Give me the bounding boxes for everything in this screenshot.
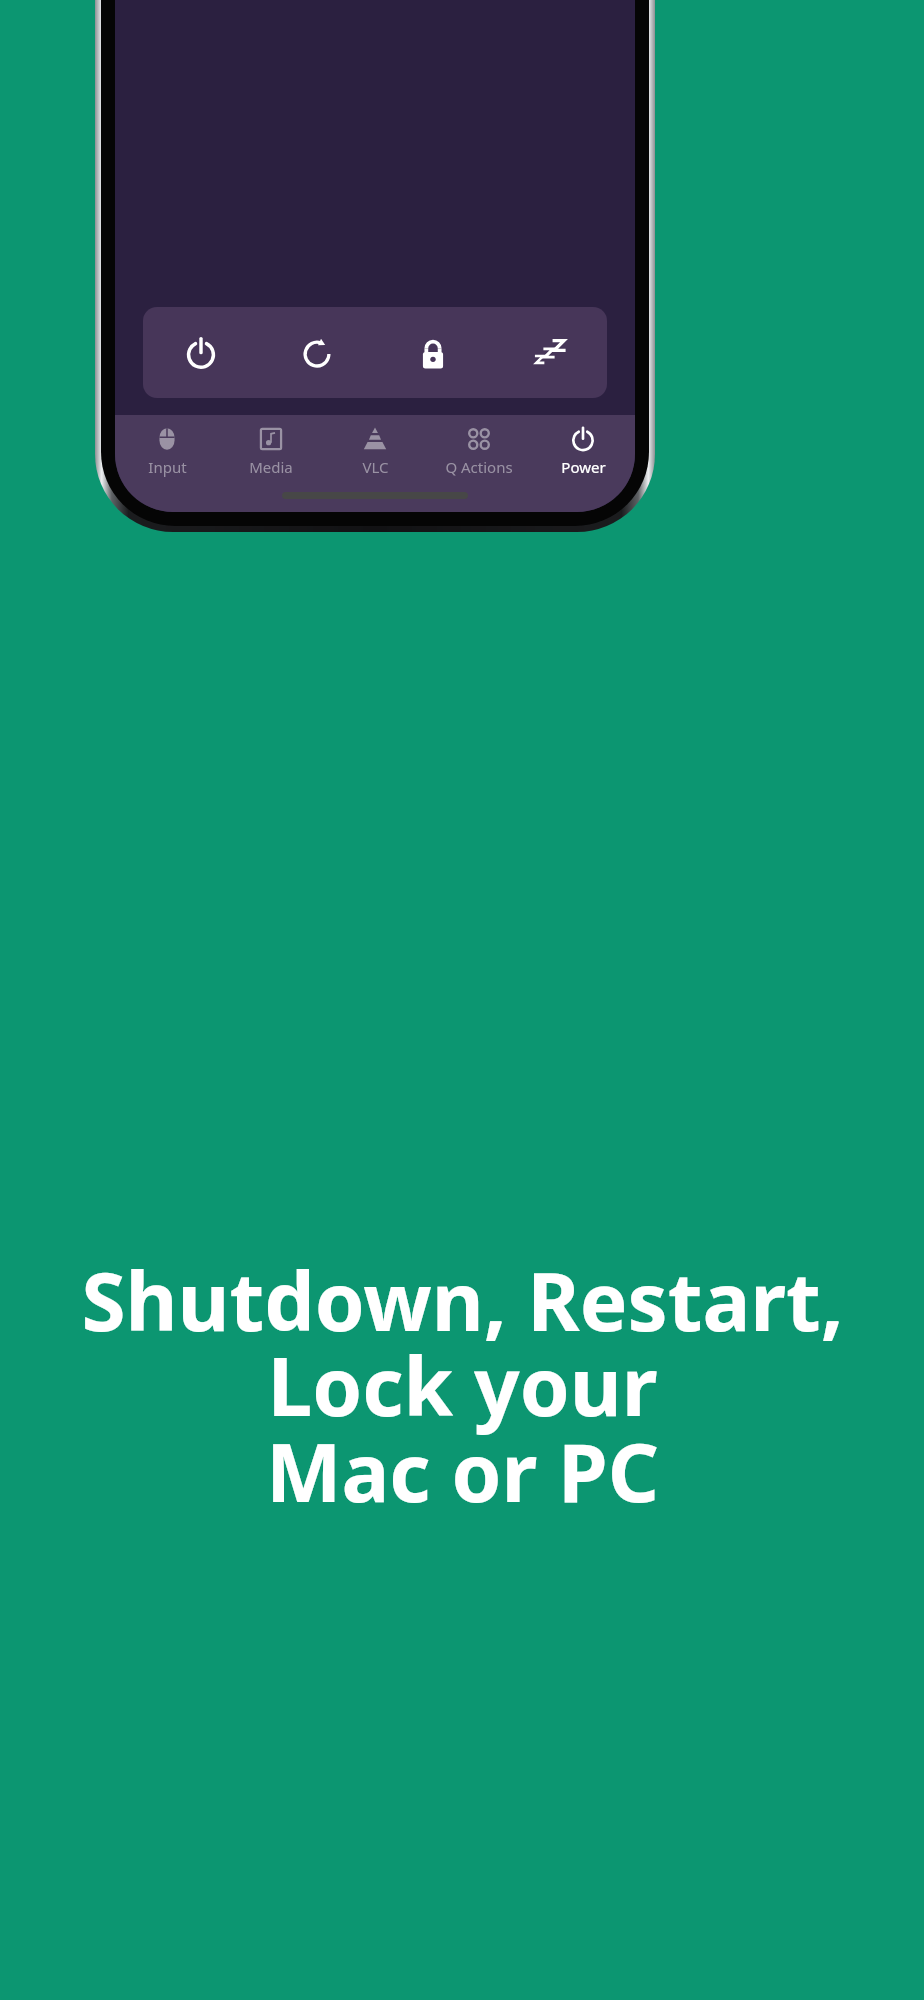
button[interactable]: Q Actions <box>427 425 531 512</box>
staticText: Q Actions <box>445 457 513 477</box>
button[interactable]: VLC <box>323 425 427 512</box>
staticText: Media <box>249 457 293 477</box>
button[interactable]: Sleep <box>491 307 607 398</box>
button[interactable]: Input <box>115 425 219 512</box>
button[interactable]: Shut down <box>143 307 259 398</box>
button[interactable]: Media <box>219 425 323 512</box>
staticText: VLC <box>362 457 389 477</box>
button[interactable]: Lock <box>375 307 491 398</box>
staticText: Shutdown, Restart, Lock your Mac or PC <box>81 1245 844 1526</box>
staticText: Power <box>561 457 606 477</box>
button[interactable]: Power <box>531 425 635 512</box>
button[interactable]: Restart <box>259 307 375 398</box>
staticText: Input <box>148 457 187 477</box>
